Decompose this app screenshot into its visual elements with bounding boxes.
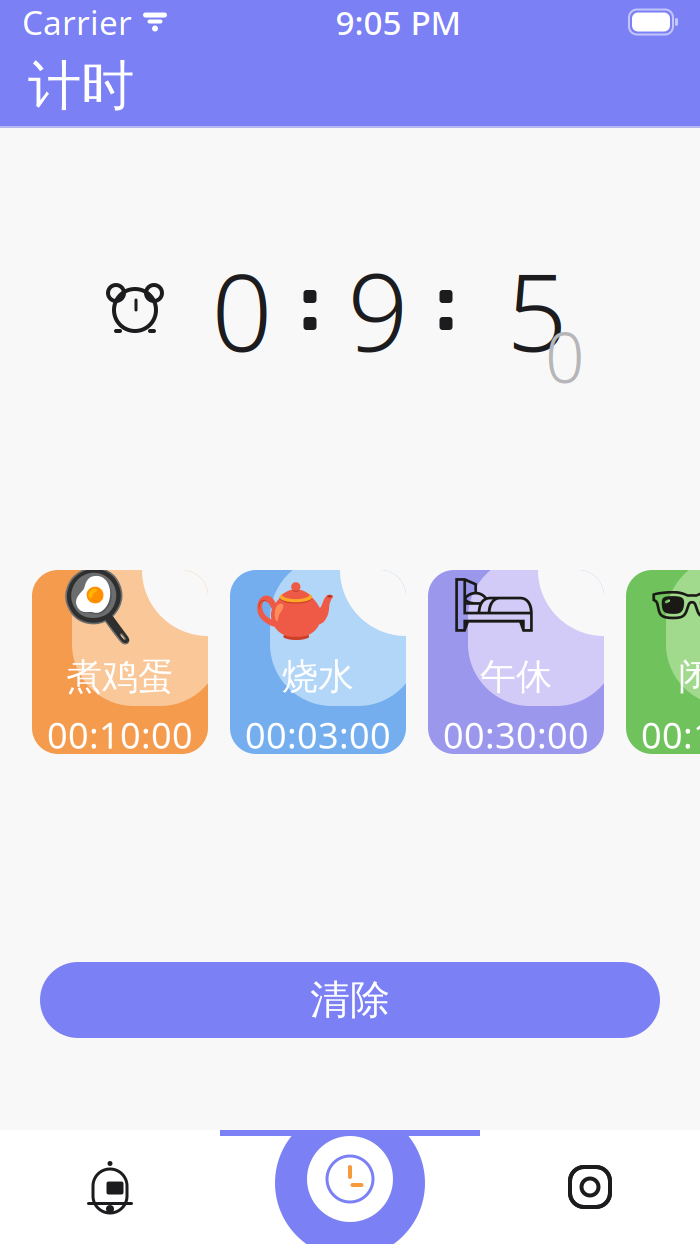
staticText: 🫖 [252,565,338,645]
staticText: 9 [347,239,408,381]
button[interactable]: 提醒 [50,1130,170,1244]
staticText: 5 [506,239,567,381]
button[interactable]: 🛏 [428,570,604,754]
button[interactable]: 🍳 [32,570,208,754]
staticText: 0 [545,310,585,402]
staticText: 00:15:00 [641,711,700,759]
staticText: 00:03:00 [245,711,391,759]
staticText: 午休 [480,655,552,699]
staticText: 00:30:00 [443,711,589,759]
staticText: 🛏 [450,565,538,645]
button[interactable]: 🕶 [626,570,700,754]
staticText: 煮鸡蛋 [66,655,174,699]
staticText: 🍳 [54,565,140,645]
button[interactable]: 清除 [40,962,660,1038]
staticText: 计时 [28,53,134,119]
button[interactable]: 设置 [530,1130,650,1244]
staticText: 00:10:00 [47,711,193,759]
staticText: 0 [211,239,272,381]
staticText: 闭目 [678,655,700,699]
staticText: 清除 [310,975,390,1024]
staticText: 🕶 [648,565,700,645]
staticText: 9:05 PM [335,0,461,44]
button[interactable]: 🫖 [230,570,406,754]
staticText: Carrier [22,0,132,44]
button[interactable]: 计时 [290,1130,410,1244]
staticText: 烧水 [282,655,354,699]
